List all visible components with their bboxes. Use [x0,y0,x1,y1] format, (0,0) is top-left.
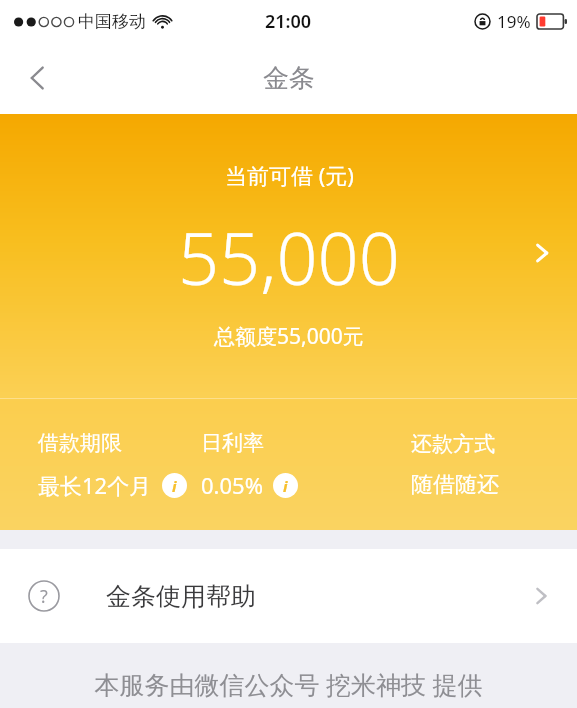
staticText: 21:00 [265,9,312,34]
button[interactable]: Back [10,50,66,106]
staticText: 总额度55,000元 [214,322,364,351]
staticText: 日利率 [201,430,264,456]
staticText: 金条 [263,62,315,95]
staticText: 借款期限 [38,430,122,456]
staticText: 还款方式 [411,431,495,457]
staticText: 最长12个月 [38,470,152,500]
staticText: 19% [497,10,531,33]
staticText: i [172,476,177,496]
staticText: 本服务由微信公众号 挖米神技 提供 [94,667,483,701]
button[interactable]: ? [0,549,577,643]
staticText: i [283,476,288,496]
staticText: 金条使用帮助 [106,581,256,612]
button[interactable]: More info [162,473,187,498]
staticText: 当前可借 (元) [225,160,354,190]
staticText: 55,000 [178,208,400,306]
button[interactable]: 当前可借 (元) [0,114,577,398]
staticText: 中国移动 [78,11,146,32]
staticText: 随借随还 [411,471,499,499]
button[interactable]: More info [273,473,298,498]
staticText: ? [40,584,48,609]
staticText: 0.05% [201,470,263,500]
